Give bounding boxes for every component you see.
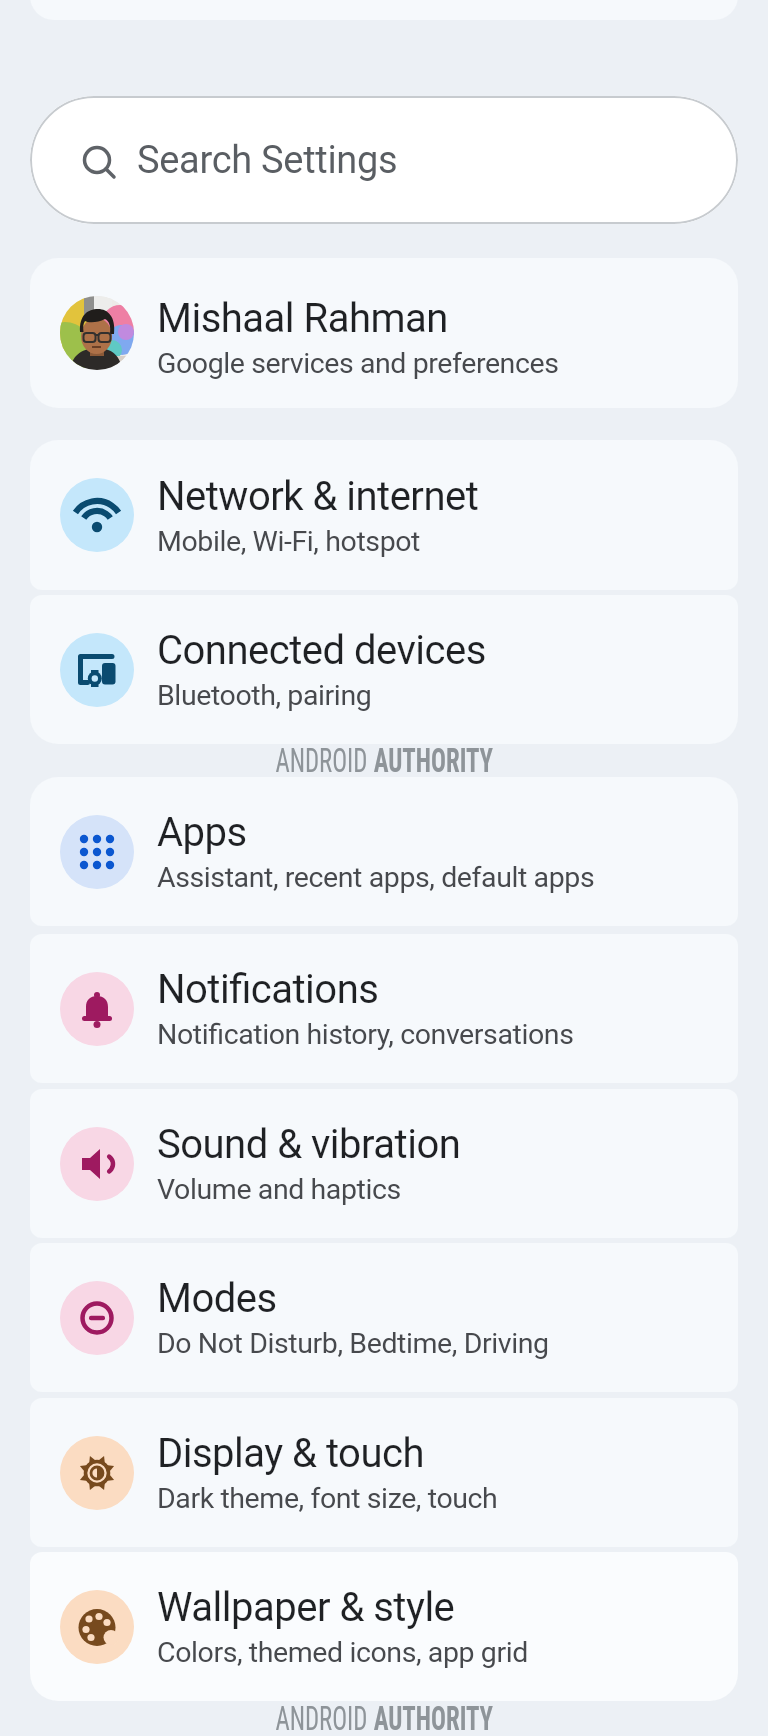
button[interactable]: Apps <box>30 777 738 926</box>
staticText: AUTHORITY <box>374 741 494 780</box>
staticText: ANDROID <box>275 1699 374 1736</box>
staticText: Assistant, recent apps, default apps <box>157 861 595 894</box>
staticText: Bluetooth, pairing <box>157 679 372 712</box>
staticText: ANDROID <box>275 741 374 780</box>
button[interactable]: Notifications <box>30 934 738 1083</box>
staticText: Sound & vibration <box>157 1121 461 1168</box>
button[interactable]: Wallpaper & style <box>30 1552 738 1701</box>
staticText: AUTHORITY <box>374 1699 494 1736</box>
button[interactable]: Mishaal Rahman <box>30 258 738 408</box>
staticText: Apps <box>157 809 247 856</box>
staticText: Google services and preferences <box>157 347 559 380</box>
staticText: Dark theme, font size, touch <box>157 1482 498 1515</box>
button[interactable]: Network & internet <box>30 440 738 590</box>
staticText: Network & internet <box>157 473 479 520</box>
staticText: Search Settings <box>137 138 398 183</box>
staticText: Do Not Disturb, Bedtime, Driving <box>157 1327 549 1360</box>
button[interactable]: Connected devices <box>30 595 738 744</box>
staticText: Wallpaper & style <box>157 1584 455 1631</box>
staticText: Connected devices <box>157 627 486 674</box>
staticText: Notification history, conversations <box>157 1018 574 1051</box>
staticText: Volume and haptics <box>157 1173 401 1206</box>
staticText: Colors, themed icons, app grid <box>157 1636 528 1669</box>
button[interactable]: Search Settings <box>30 96 738 224</box>
button[interactable]: Sound & vibration <box>30 1089 738 1238</box>
button[interactable]: Modes <box>30 1243 738 1392</box>
staticText: Mishaal Rahman <box>157 295 448 342</box>
staticText: Mobile, Wi-Fi, hotspot <box>157 525 421 558</box>
staticText: Notifications <box>157 966 379 1013</box>
staticText: Modes <box>157 1275 277 1322</box>
button[interactable]: Display & touch <box>30 1398 738 1547</box>
staticText: Display & touch <box>157 1430 424 1477</box>
